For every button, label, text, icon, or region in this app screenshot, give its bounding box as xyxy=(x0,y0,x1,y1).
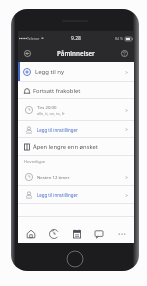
button[interactable]: Åpen lengre enn ønsket xyxy=(18,138,134,156)
staticText: 9.28 xyxy=(71,35,81,42)
button[interactable]: Messages xyxy=(88,217,109,243)
staticText: Legg til innstillinger xyxy=(37,127,78,133)
button[interactable]: Home xyxy=(20,217,41,243)
button[interactable]: Calendar xyxy=(66,217,87,243)
staticText: Nesten 12 timer xyxy=(37,174,70,180)
staticText: Legg til ny xyxy=(35,68,65,76)
button[interactable]: Help xyxy=(120,49,129,58)
button[interactable]: Tirs 20:00 xyxy=(18,99,134,121)
button[interactable]: Legg til ny xyxy=(18,62,134,82)
button[interactable]: Home xyxy=(66,250,84,268)
button[interactable]: Nesten 12 timer xyxy=(18,168,134,186)
staticText: Telenor xyxy=(27,36,40,41)
staticText: 84 % xyxy=(115,36,124,41)
button[interactable]: Fortsatt frakoblet xyxy=(18,82,134,99)
button[interactable]: Legg til innstillinger xyxy=(18,186,134,204)
button[interactable]: Back xyxy=(23,49,32,58)
staticText: Legg til innstillinger xyxy=(37,192,78,198)
staticText: Påminnelser xyxy=(57,49,95,57)
button[interactable]: Legg til innstillinger xyxy=(18,121,134,138)
staticText: alle, ti, on, to, fr xyxy=(37,111,65,116)
button[interactable]: History xyxy=(43,217,64,243)
staticText: Hovedtype xyxy=(24,159,46,165)
staticText: Åpen lengre enn ønsket xyxy=(33,143,98,151)
button[interactable]: More xyxy=(111,217,132,243)
staticText: Fortsatt frakoblet xyxy=(33,87,81,95)
staticText: Tirs 20:00 xyxy=(37,104,57,110)
